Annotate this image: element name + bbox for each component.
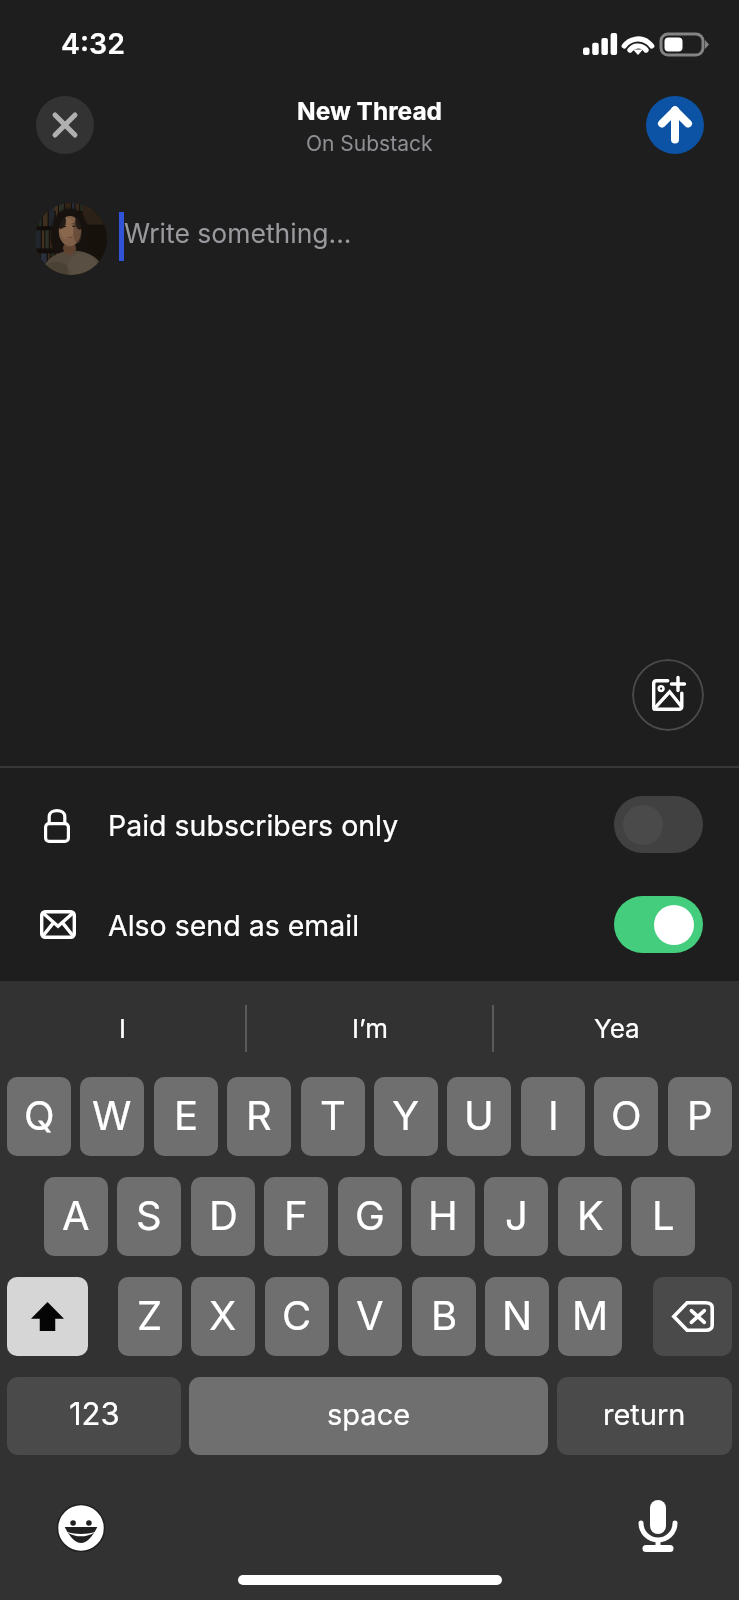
staticText: E (174, 1091, 199, 1139)
button[interactable]: K (558, 1177, 622, 1256)
button[interactable]: Also send as email (0, 896, 739, 953)
staticText: space (327, 1397, 411, 1432)
staticText: T (320, 1091, 346, 1139)
button[interactable]: C (265, 1277, 329, 1356)
staticText: P (687, 1091, 713, 1139)
staticText: U (464, 1091, 494, 1139)
staticText: H (428, 1191, 458, 1239)
button[interactable]: H (411, 1177, 475, 1256)
staticText: I (548, 1091, 559, 1139)
staticText: 4:32 (61, 26, 125, 60)
staticText: S (136, 1191, 162, 1239)
staticText: F (284, 1191, 308, 1239)
button[interactable]: T (301, 1077, 365, 1156)
button[interactable]: Dictation (638, 1498, 678, 1552)
staticText: W (92, 1091, 132, 1139)
staticText: A (62, 1191, 90, 1239)
staticText: 123 (69, 1395, 120, 1433)
staticText: Z (137, 1291, 163, 1339)
button[interactable]: P (668, 1077, 732, 1156)
button[interactable]: R (227, 1077, 291, 1156)
button[interactable]: J (484, 1177, 548, 1256)
staticText: N (502, 1291, 533, 1339)
button[interactable]: X (191, 1277, 255, 1356)
staticText: G (355, 1191, 385, 1239)
button[interactable]: Emoji (57, 1504, 105, 1552)
button[interactable]: Q (7, 1077, 71, 1156)
button[interactable]: Y (374, 1077, 438, 1156)
staticText: M (572, 1291, 609, 1339)
staticText: V (356, 1291, 384, 1339)
staticText: D (209, 1191, 238, 1239)
button[interactable]: Close (36, 96, 94, 154)
button[interactable]: A (44, 1177, 108, 1256)
staticText: Also send as email (108, 908, 360, 942)
staticText: O (611, 1091, 642, 1139)
staticText: X (209, 1291, 237, 1339)
button[interactable]: S (117, 1177, 181, 1256)
button[interactable]: W (80, 1077, 144, 1156)
button[interactable]: Paid subscribers only (0, 796, 739, 853)
button[interactable]: U (447, 1077, 511, 1156)
button[interactable]: D (191, 1177, 255, 1256)
button[interactable]: Z (118, 1277, 182, 1356)
button[interactable]: Add image (632, 659, 704, 731)
staticText: return (603, 1397, 686, 1432)
button[interactable]: space (189, 1377, 548, 1455)
staticText: B (431, 1291, 458, 1339)
staticText: J (505, 1191, 528, 1239)
button[interactable]: O (594, 1077, 658, 1156)
staticText: Write something... (124, 217, 352, 249)
button[interactable] (614, 896, 703, 953)
button[interactable]: I (0, 981, 245, 1075)
staticText: New Thread (297, 96, 443, 126)
staticText: I’m (352, 1013, 388, 1044)
staticText: R (246, 1091, 272, 1139)
button[interactable]: Yea (494, 981, 739, 1075)
staticText: Yea (594, 1013, 640, 1044)
button[interactable]: F (264, 1177, 328, 1256)
button[interactable] (614, 796, 703, 853)
button[interactable]: B (412, 1277, 476, 1356)
button[interactable]: 123 (7, 1377, 181, 1455)
staticText: K (577, 1191, 604, 1239)
staticText: I (119, 1013, 126, 1044)
staticText: L (652, 1191, 675, 1239)
button[interactable]: I’m (247, 981, 492, 1075)
button[interactable]: E (154, 1077, 218, 1156)
staticText: Q (24, 1091, 55, 1139)
button[interactable]: I (521, 1077, 585, 1156)
button[interactable]: M (558, 1277, 622, 1356)
button[interactable]: Post (646, 96, 704, 154)
button[interactable]: N (485, 1277, 549, 1356)
staticText: Y (392, 1091, 420, 1139)
button[interactable]: G (338, 1177, 402, 1256)
button[interactable]: L (631, 1177, 695, 1256)
staticText: Paid subscribers only (108, 808, 399, 842)
staticText: C (282, 1291, 312, 1339)
button[interactable]: Shift (7, 1277, 88, 1356)
button[interactable]: Backspace (653, 1277, 732, 1356)
staticText: On Substack (306, 131, 433, 156)
button[interactable]: V (338, 1277, 402, 1356)
button[interactable]: return (557, 1377, 732, 1455)
